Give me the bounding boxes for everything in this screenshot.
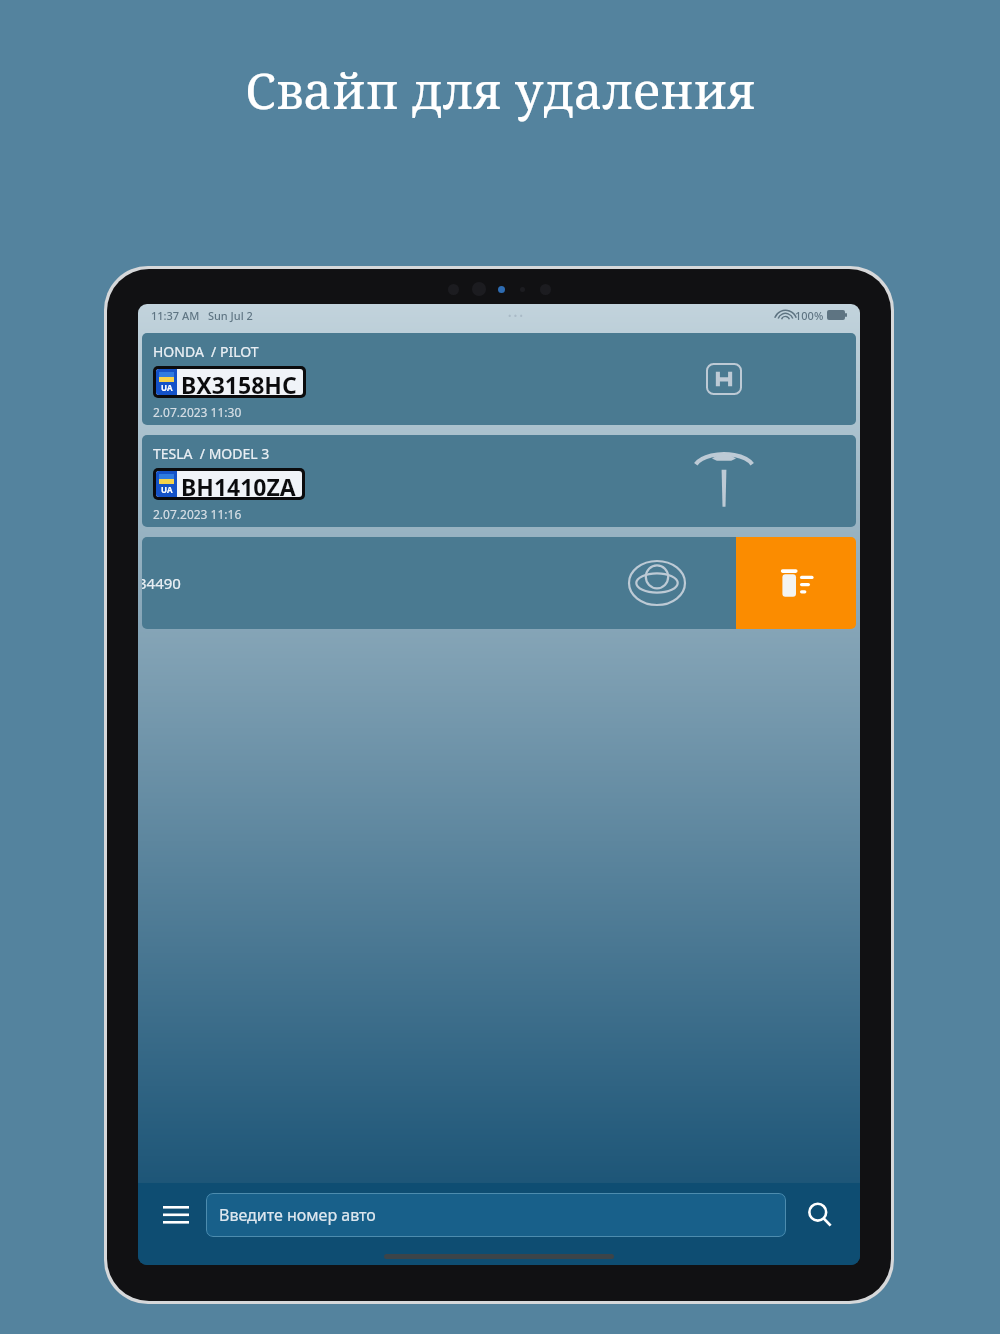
staticText: 34490: [142, 573, 181, 593]
staticText: UA: [161, 382, 173, 393]
button[interactable]: Menu: [156, 1195, 196, 1235]
staticText: BX3158HC: [181, 369, 297, 395]
staticText: TESLA / MODEL 3: [153, 444, 270, 463]
button[interactable]: Delete: [736, 537, 856, 629]
staticText: • • •: [508, 309, 523, 321]
staticText: 2.07.2023 11:30: [153, 404, 242, 420]
button[interactable]: Введите номер авто: [206, 1193, 786, 1237]
staticText: UA: [161, 484, 173, 495]
button[interactable]: 34490: [142, 537, 736, 629]
staticText: BH1410ZA: [181, 471, 296, 497]
staticText: 2.07.2023 11:16: [153, 506, 242, 522]
staticText: 11:37 AM Sun Jul 2: [151, 308, 253, 323]
button[interactable]: HONDA / PILOT: [142, 333, 856, 425]
staticText: 100%: [795, 308, 824, 323]
staticText: Свайп для удаления: [245, 56, 756, 124]
button[interactable]: Search: [798, 1193, 842, 1237]
button[interactable]: TESLA / MODEL 3: [142, 435, 856, 527]
staticText: HONDA / PILOT: [153, 342, 259, 361]
staticText: Введите номер авто: [219, 1204, 376, 1226]
